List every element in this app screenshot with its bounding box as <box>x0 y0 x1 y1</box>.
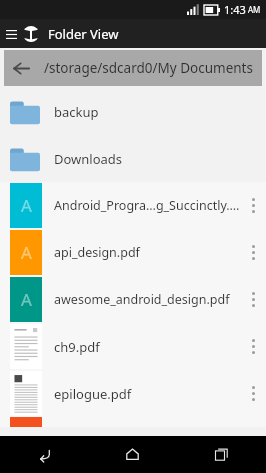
staticText: 1:43 <box>224 2 246 17</box>
button[interactable]: App logo <box>21 24 41 44</box>
staticText: awesome_android_design.pdf <box>54 291 240 308</box>
button[interactable]: More options <box>240 323 266 370</box>
other: Up one level <box>4 51 38 85</box>
button[interactable]: epilogue.pdf <box>0 370 266 417</box>
staticText: Android_Progra…g_Succinctly.pdf <box>54 197 240 214</box>
staticText: AM <box>248 4 261 15</box>
staticText: backup <box>54 103 99 121</box>
staticText: api_design.pdf <box>54 244 240 261</box>
button[interactable]: A <box>0 182 266 229</box>
button[interactable]: ch9.pdf <box>0 323 266 370</box>
staticText: A <box>21 288 32 311</box>
button[interactable]: More options <box>240 370 266 417</box>
staticText: A <box>21 194 32 217</box>
button[interactable]: Back <box>0 436 88 473</box>
staticText: ch9.pdf <box>54 338 240 356</box>
button[interactable]: Up one level <box>4 50 262 86</box>
button[interactable]: Downloads <box>0 135 266 182</box>
button[interactable]: More options <box>240 276 266 323</box>
button[interactable]: More options <box>240 182 266 229</box>
button[interactable] <box>0 417 266 427</box>
button[interactable]: A <box>0 276 266 323</box>
button[interactable]: backup <box>0 88 266 135</box>
staticText: Folder View <box>48 25 119 43</box>
button[interactable]: Recent apps <box>177 436 266 473</box>
staticText: A <box>21 241 32 264</box>
staticText: Downloads <box>54 150 123 168</box>
staticText: epilogue.pdf <box>54 385 240 403</box>
button[interactable]: Menu <box>3 22 19 46</box>
button[interactable]: More options <box>240 229 266 276</box>
staticText: /storage/sdcard0/My Documents <box>44 59 253 77</box>
button[interactable]: A <box>0 229 266 276</box>
button[interactable]: Home <box>88 436 177 473</box>
